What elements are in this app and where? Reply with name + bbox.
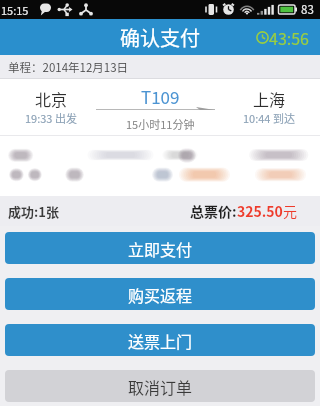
button[interactable]: 购买返程 — [5, 278, 315, 310]
staticText: 83 — [301, 1, 314, 18]
staticText: T109 — [141, 84, 180, 109]
staticText: 取消订单 — [128, 375, 193, 398]
staticText: 北京 — [35, 87, 68, 110]
staticText: 15小时11分钟 — [126, 116, 195, 132]
staticText: 43:56 — [269, 26, 309, 49]
staticText: 成功:1张 — [8, 202, 59, 221]
staticText: 单程：2014年12月13日 — [8, 59, 129, 76]
staticText: 上海 — [253, 87, 286, 110]
staticText: 325.50 — [237, 201, 283, 221]
button[interactable]: 取消订单 — [5, 370, 315, 402]
staticText: 送票上门 — [128, 329, 193, 352]
staticText: 10:44 到达 — [243, 110, 295, 126]
staticText: 元 — [283, 201, 297, 221]
button[interactable]: Payment countdown 43:56 — [256, 26, 309, 49]
staticText: 立即支付 — [128, 237, 193, 260]
staticText: 确认支付 — [120, 23, 200, 52]
staticText: 总票价: — [190, 201, 237, 221]
button[interactable]: 送票上门 — [5, 324, 315, 356]
staticText: 15:15 — [1, 2, 29, 18]
staticText: 19:33 出发 — [25, 110, 77, 126]
staticText: 购买返程 — [128, 283, 193, 306]
button[interactable]: 立即支付 — [5, 232, 315, 264]
